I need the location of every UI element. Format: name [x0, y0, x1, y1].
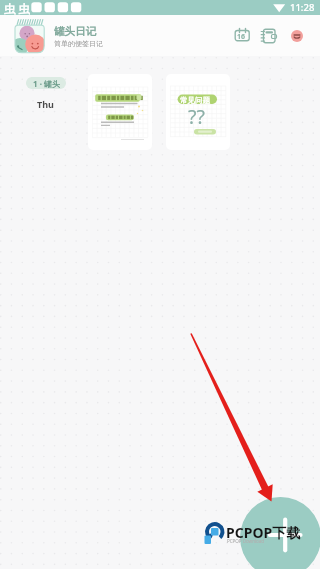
button[interactable]: Calendar: [233, 27, 250, 44]
staticText: 1 · 罐头: [33, 78, 60, 89]
staticText: 罐头日记: [54, 25, 96, 38]
button[interactable]: Add note: [240, 497, 320, 569]
button[interactable]: 1 · 罐头: [26, 77, 66, 89]
staticText: PCPOP下载: [226, 523, 301, 542]
staticText: ??: [188, 103, 205, 130]
staticText: 常见问题: [180, 96, 210, 105]
button[interactable]: Profile: [291, 30, 303, 42]
staticText: PCPOP Download: [227, 538, 265, 544]
button[interactable]: [88, 74, 152, 150]
button[interactable]: Notebook: [260, 27, 277, 44]
staticText: 简单的便签日记: [54, 39, 103, 48]
staticText: 虫 虫: [4, 1, 30, 16]
staticText: 16: [237, 32, 246, 42]
staticText: Thu: [37, 98, 54, 110]
button[interactable]: 常见问题: [166, 74, 230, 150]
staticText: 11:28: [290, 1, 315, 14]
